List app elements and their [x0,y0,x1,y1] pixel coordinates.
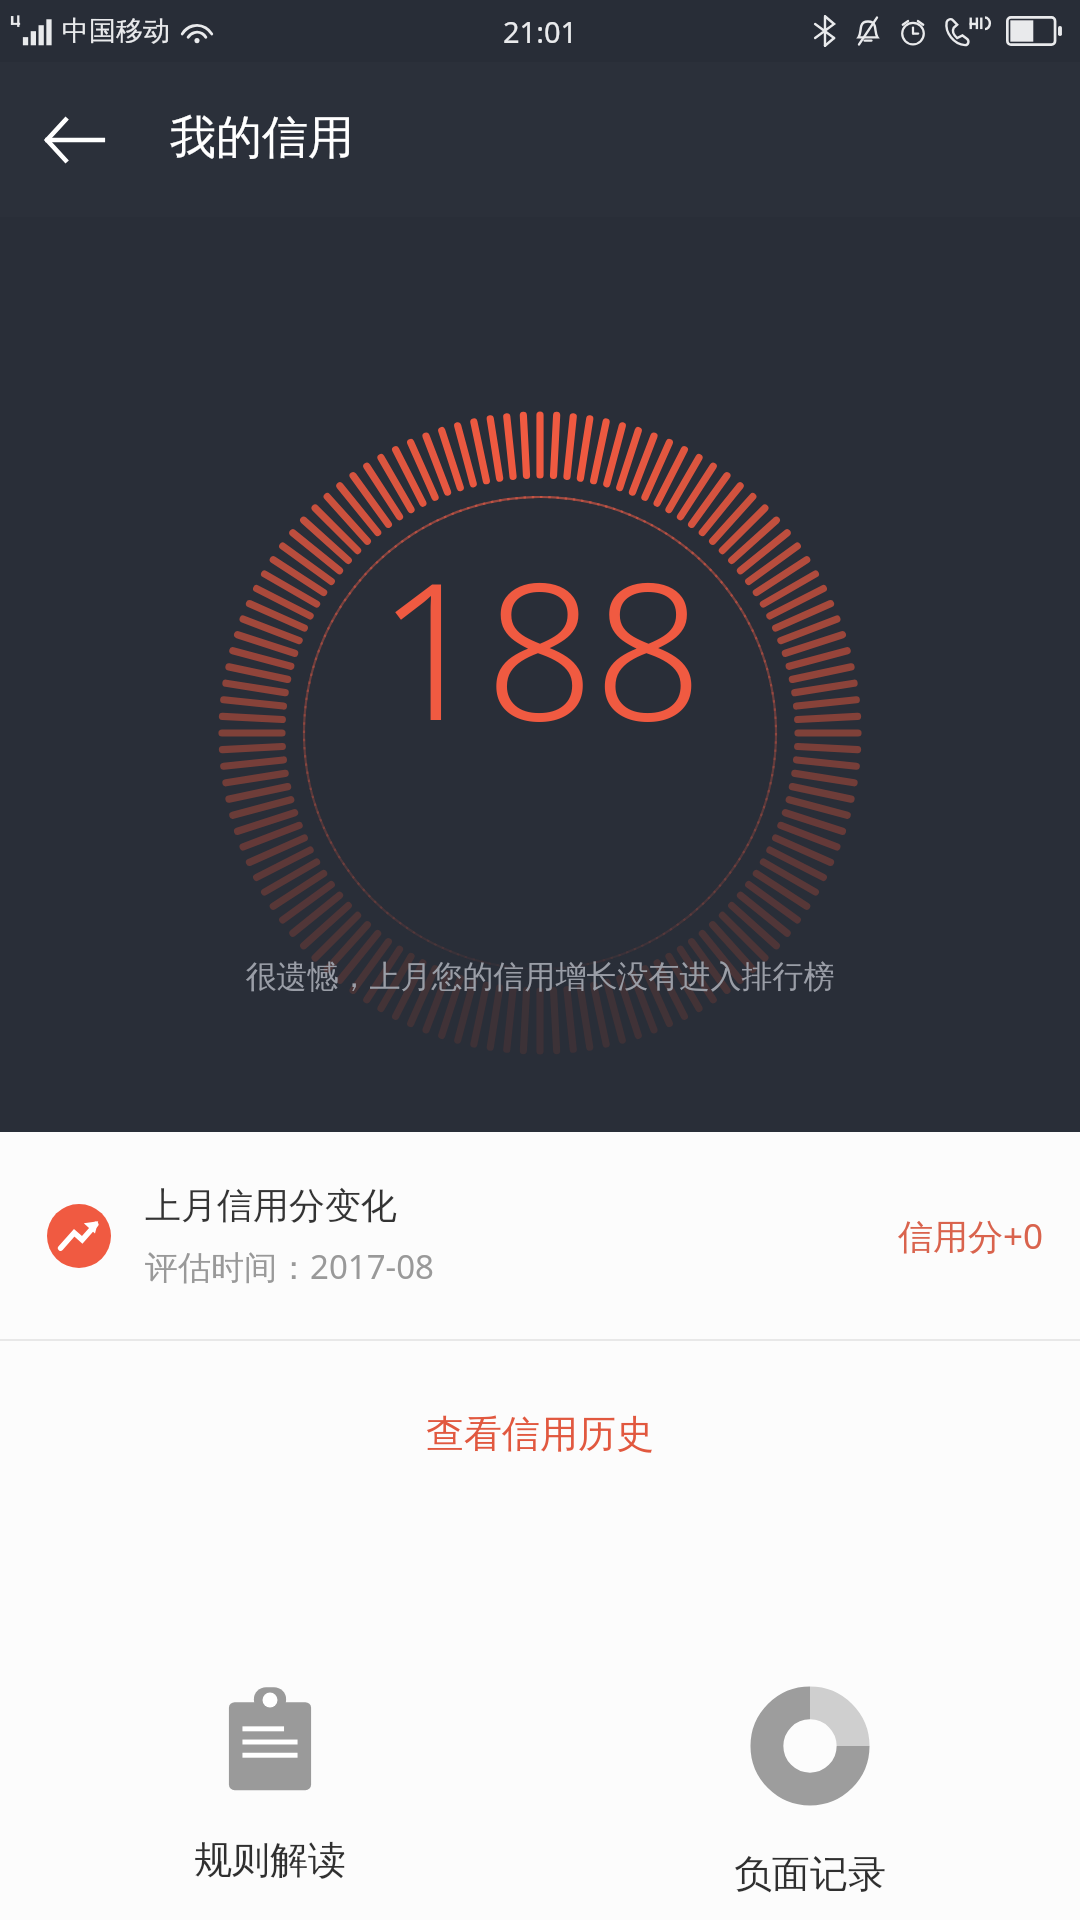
staticText: 信用分+0 [898,1212,1044,1260]
button[interactable]: 负面记录 [540,1676,1080,1906]
staticText: 负面记录 [734,1850,886,1898]
staticText: 评估时间：2017-08 [145,1244,434,1289]
staticText: 21:01 [503,12,578,51]
staticText: 188 [377,517,703,776]
button[interactable]: 上月信用分变化 [0,1132,1080,1339]
staticText: 我的信用 [170,109,354,167]
staticText: 上月信用分变化 [145,1183,397,1228]
staticText: 很遗憾，上月您的信用增长没有进入排行榜 [186,957,894,996]
button[interactable]: 规则解读 [0,1676,540,1892]
staticText: 查看信用历史 [426,1410,654,1458]
staticText: 规则解读 [194,1836,346,1884]
button[interactable]: 查看信用历史 [0,1341,1080,1526]
staticText: 中国移动 [62,14,170,48]
button[interactable]: Back [32,98,116,182]
